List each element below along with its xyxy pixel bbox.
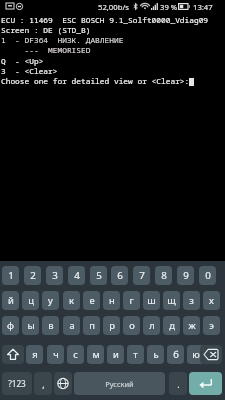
staticText: 13:47 xyxy=(193,2,213,12)
button[interactable]: м xyxy=(87,345,104,364)
button[interactable]: е xyxy=(83,291,100,310)
button[interactable]: б xyxy=(167,345,184,364)
button[interactable]: ц xyxy=(22,291,39,310)
button[interactable]: в xyxy=(42,316,59,335)
button[interactable]: а xyxy=(63,316,80,335)
button[interactable]: г xyxy=(123,291,140,310)
button[interactable]: ь xyxy=(147,345,164,364)
staticText: т xyxy=(133,348,138,361)
staticText: в xyxy=(48,319,54,332)
staticText: ш xyxy=(147,294,156,307)
button[interactable]: ч xyxy=(47,345,64,364)
staticText: 52,00b/s xyxy=(98,2,129,12)
staticText: з xyxy=(189,294,194,307)
staticText: 3 - <Clear> xyxy=(1,66,58,77)
button[interactable]: 2 xyxy=(24,266,41,285)
staticText: --- MEMORISED xyxy=(1,45,91,56)
button[interactable]: э xyxy=(203,316,220,335)
staticText: . xyxy=(177,378,180,390)
staticText: л xyxy=(149,319,155,332)
button[interactable]: Enter xyxy=(189,372,222,395)
staticText: й xyxy=(8,294,14,307)
staticText: д xyxy=(169,319,175,332)
staticText: 5 xyxy=(96,269,102,282)
button[interactable]: д xyxy=(163,316,180,335)
staticText: у xyxy=(48,294,53,307)
staticText: ECU : 11469 ESC BOSCH 9.1_Solft0000_Vdia… xyxy=(1,15,209,26)
staticText: р xyxy=(109,319,115,332)
button[interactable]: ы xyxy=(22,316,39,335)
staticText: 8 xyxy=(161,269,167,282)
button[interactable]: н xyxy=(103,291,120,310)
staticText: , xyxy=(42,378,45,390)
button[interactable]: ж xyxy=(183,316,200,335)
staticText: ?123 xyxy=(8,378,26,389)
staticText: щ xyxy=(167,294,176,307)
staticText: 3 xyxy=(52,269,58,282)
staticText: х xyxy=(209,294,214,307)
staticText: ю xyxy=(192,348,200,361)
staticText: с xyxy=(73,348,78,361)
button[interactable]: Backspace xyxy=(200,345,222,364)
staticText: э xyxy=(209,319,214,332)
button[interactable]: 9 xyxy=(177,266,194,285)
other: Screen cast xyxy=(6,3,14,10)
button[interactable]: з xyxy=(183,291,200,310)
staticText: 9 xyxy=(183,269,189,282)
button[interactable]: 0 xyxy=(199,266,216,285)
button[interactable]: 3 xyxy=(46,266,63,285)
button[interactable]: я xyxy=(26,345,43,364)
button[interactable]: ю xyxy=(187,345,204,364)
button[interactable]: щ xyxy=(163,291,180,310)
button[interactable]: х xyxy=(203,291,220,310)
staticText: о xyxy=(129,319,135,332)
button[interactable]: й xyxy=(2,291,19,310)
button[interactable]: у xyxy=(42,291,59,310)
staticText: а xyxy=(69,319,75,332)
button[interactable]: ш xyxy=(143,291,160,310)
button[interactable]: о xyxy=(123,316,140,335)
staticText: ы xyxy=(27,319,35,332)
staticText: и xyxy=(113,348,119,361)
button[interactable]: 6 xyxy=(111,266,128,285)
staticText: е xyxy=(89,294,95,307)
button[interactable]: , xyxy=(34,372,52,395)
button[interactable]: Change keyboard language xyxy=(54,372,72,395)
button[interactable]: 7 xyxy=(133,266,150,285)
staticText: 4 xyxy=(74,269,80,282)
button[interactable]: . xyxy=(169,372,187,395)
staticText: 6 xyxy=(117,269,123,282)
button[interactable]: с xyxy=(67,345,84,364)
button[interactable]: и xyxy=(107,345,124,364)
button[interactable]: р xyxy=(103,316,120,335)
button[interactable]: 4 xyxy=(68,266,85,285)
staticText: Choose one for detailed view or <Clear>: xyxy=(1,76,190,87)
staticText: Русский xyxy=(105,379,134,389)
staticText: 0 xyxy=(205,269,211,282)
staticText: ц xyxy=(28,294,34,307)
button[interactable]: Русский xyxy=(74,372,165,395)
staticText: ь xyxy=(153,348,159,361)
staticText: ч xyxy=(53,348,59,361)
staticText: м xyxy=(92,348,100,361)
staticText: 2 xyxy=(30,269,36,282)
button[interactable]: 1 xyxy=(2,266,19,285)
staticText: 1 xyxy=(8,269,14,282)
staticText: п xyxy=(89,319,95,332)
button[interactable]: л xyxy=(143,316,160,335)
staticText: г xyxy=(129,294,134,307)
staticText: ф xyxy=(7,319,14,332)
button[interactable]: 5 xyxy=(90,266,107,285)
button[interactable]: 8 xyxy=(155,266,172,285)
button[interactable]: т xyxy=(127,345,144,364)
other: Do not disturb xyxy=(16,3,23,10)
button[interactable]: ф xyxy=(2,316,19,335)
button[interactable]: п xyxy=(83,316,100,335)
staticText: б xyxy=(173,348,179,361)
staticText: 7 xyxy=(139,269,145,282)
staticText: 39 % xyxy=(160,2,178,12)
button[interactable]: Shift xyxy=(2,345,24,364)
button[interactable]: к xyxy=(63,291,80,310)
button[interactable]: ?123 xyxy=(2,372,32,395)
staticText: Q - <Up> xyxy=(1,56,44,67)
